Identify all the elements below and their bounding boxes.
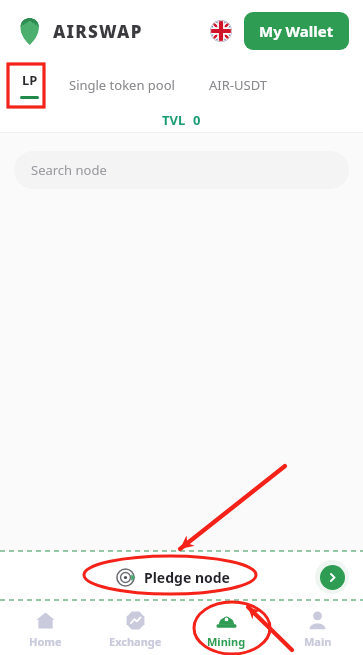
staticText: AIR-USDT (209, 76, 267, 94)
button[interactable]: Exchange (90, 603, 181, 655)
button[interactable]: Mining (181, 603, 272, 655)
button[interactable]: Main (272, 603, 363, 655)
staticText: Mining (207, 634, 246, 649)
staticText: Single token pool (69, 76, 175, 94)
staticText: My Wallet (259, 21, 334, 41)
staticText: 0 (193, 111, 201, 129)
staticText: Pledge node (144, 568, 230, 587)
staticText: Exchange (109, 634, 162, 649)
staticText: Main (304, 634, 332, 649)
button[interactable]: Single token pool (65, 70, 179, 100)
staticText: Search node (31, 161, 107, 179)
button[interactable]: Search node (14, 151, 349, 189)
button[interactable]: LP (16, 71, 43, 99)
button[interactable]: Next (320, 565, 345, 590)
staticText: Home (29, 634, 62, 649)
staticText: TVL (162, 111, 186, 129)
button[interactable]: Home (0, 603, 90, 655)
button[interactable]: Language (210, 20, 232, 42)
button[interactable]: My Wallet (244, 12, 349, 50)
staticText: LP (22, 71, 38, 89)
staticText: AIRSWAP (53, 20, 143, 43)
button[interactable]: AIR-USDT (205, 70, 271, 100)
button[interactable]: Pledge node (0, 551, 363, 603)
